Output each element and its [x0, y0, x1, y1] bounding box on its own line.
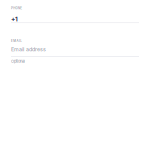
staticText: Optional	[11, 59, 25, 64]
staticText: PHONE	[11, 6, 22, 10]
staticText: Email address	[11, 46, 46, 53]
button[interactable]: EMAIL	[11, 39, 139, 63]
button[interactable]: PHONE	[11, 6, 139, 23]
staticText: +1	[11, 15, 18, 23]
staticText: EMAIL	[11, 39, 22, 43]
